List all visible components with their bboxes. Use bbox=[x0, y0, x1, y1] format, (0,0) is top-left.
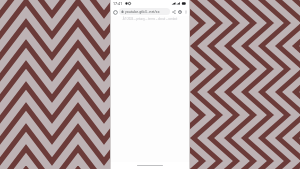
staticText: 17:41 bbox=[113, 1, 123, 6]
button[interactable]: Home bbox=[112, 9, 118, 15]
staticText: youtube-gtb3...net/xx bbox=[125, 9, 160, 14]
button[interactable]: More options bbox=[183, 9, 188, 14]
button[interactable]: History bbox=[177, 9, 183, 15]
button[interactable]: Share bbox=[171, 9, 177, 15]
staticText: Â© 2024 -- privacy -- terms -- about -- … bbox=[112, 17, 188, 21]
button[interactable]: youtube-gtb3...net/xx bbox=[119, 8, 170, 15]
